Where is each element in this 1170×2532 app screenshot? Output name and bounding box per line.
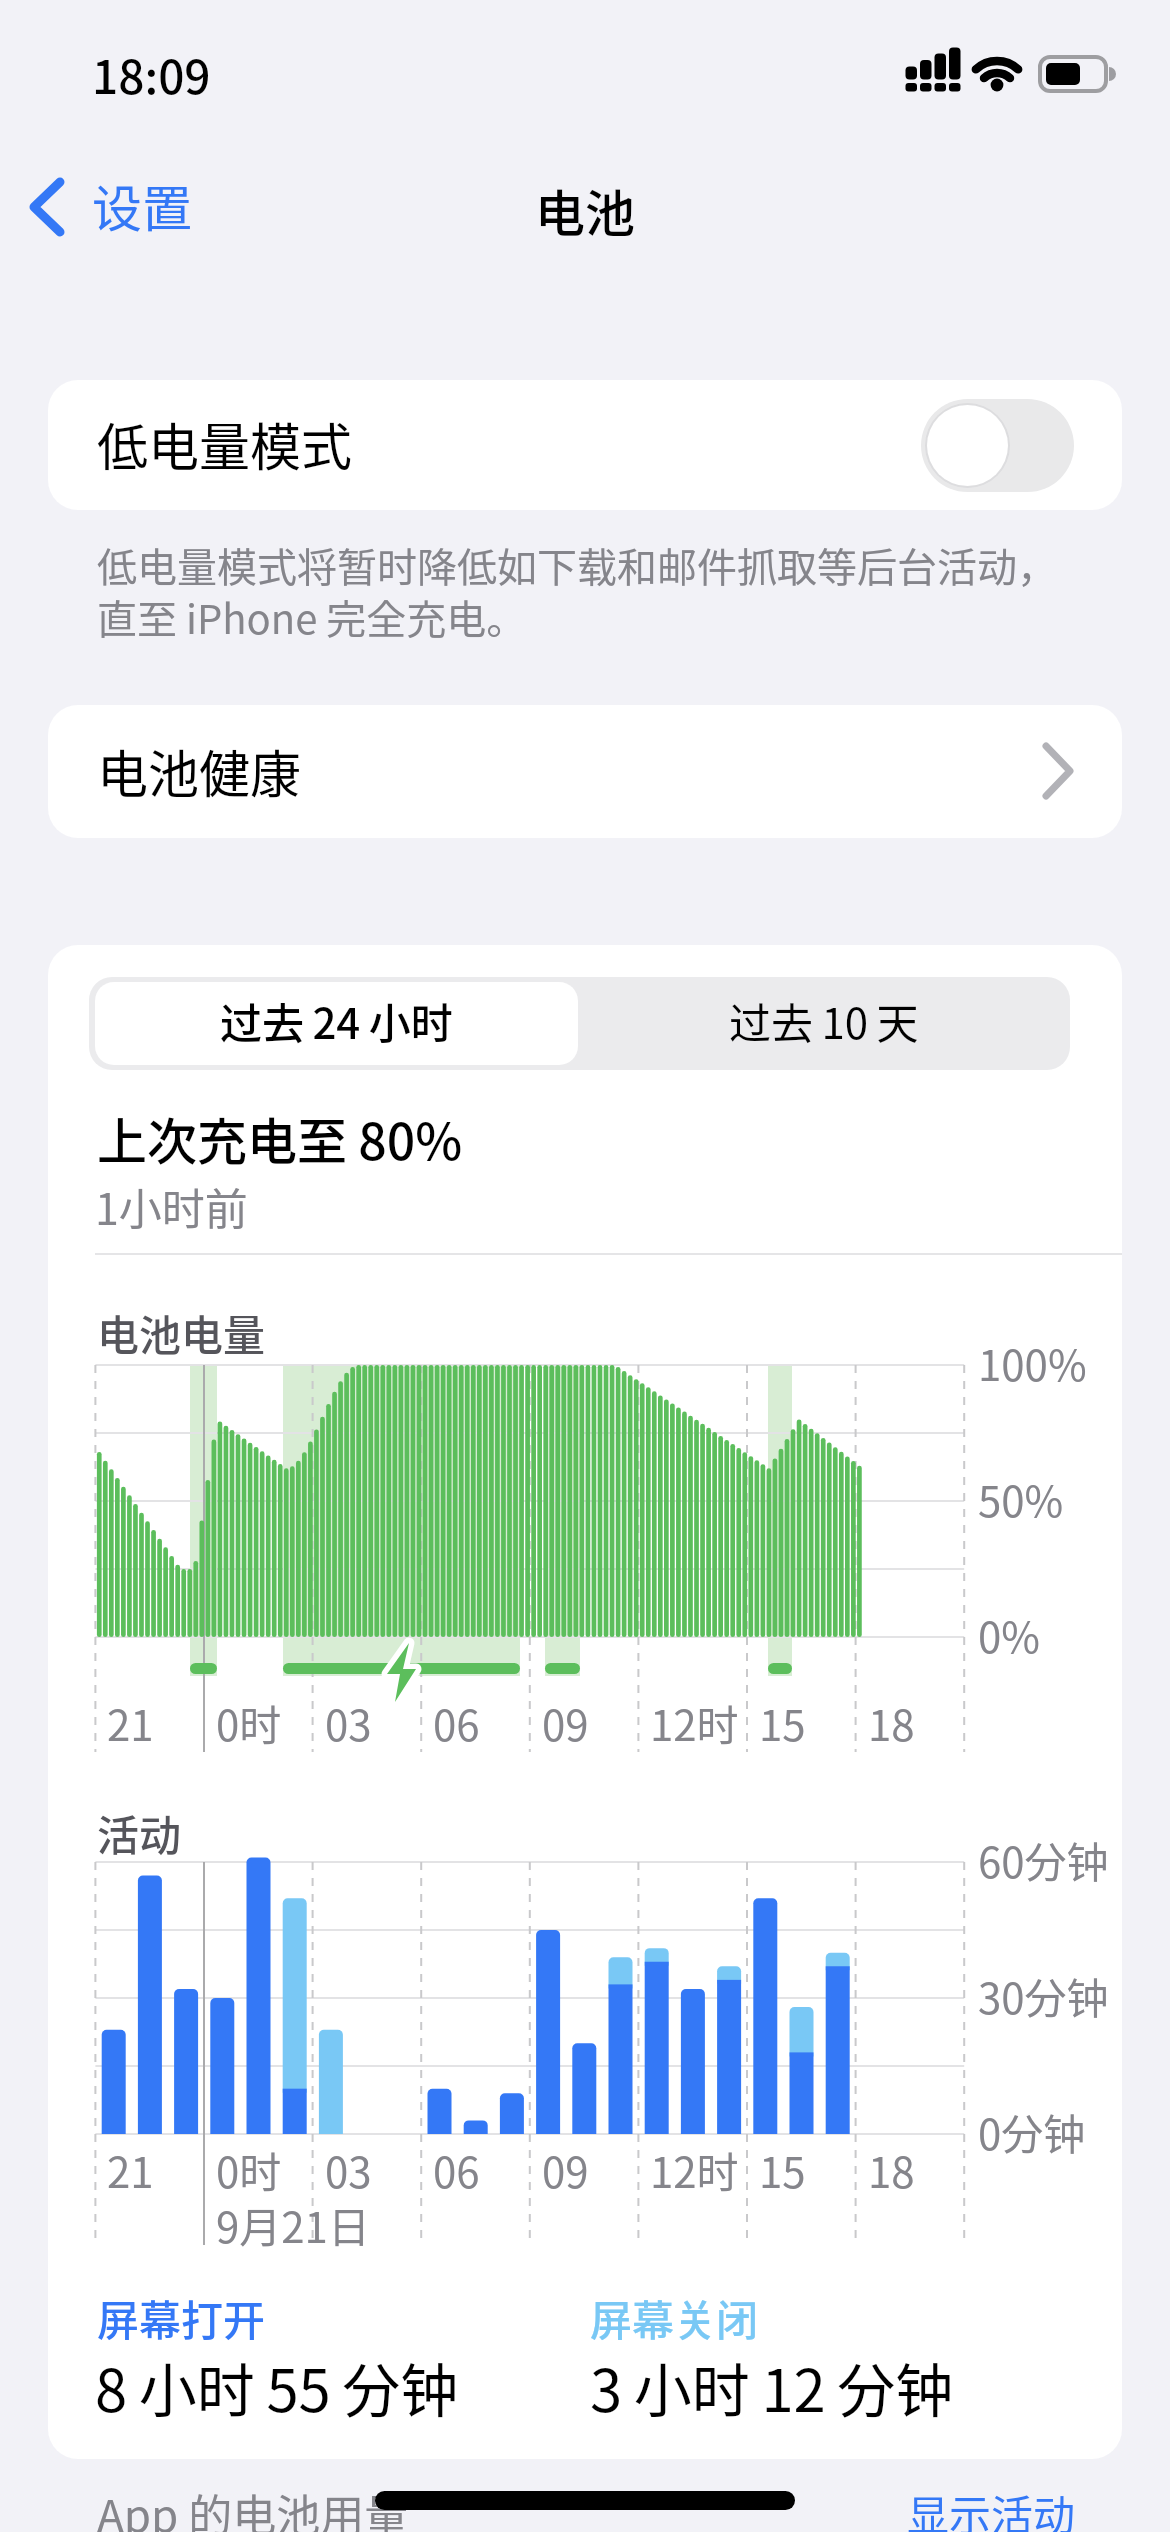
staticText: 03 — [325, 1692, 372, 1753]
button[interactable] — [89, 977, 579, 1070]
staticText: 09 — [542, 1692, 589, 1753]
staticText: 06 — [433, 1692, 480, 1753]
staticText: 1小时前 — [95, 1175, 248, 1237]
button[interactable]: 显示活动 — [907, 2482, 1076, 2532]
staticText: 100% — [978, 1332, 1087, 1393]
staticText: 直至 iPhone 完全充电。 — [97, 588, 527, 646]
staticText: 3 小时 12 分钟 — [590, 2345, 954, 2429]
staticText: 低电量模式将暂时降低如下载和邮件抓取等后台活动， — [97, 536, 1057, 594]
staticText: 18 — [868, 2139, 915, 2200]
staticText: 21 — [107, 2139, 154, 2200]
staticText: 06 — [433, 2139, 480, 2200]
staticText: 显示活动 — [907, 2482, 1076, 2532]
staticText: 活动 — [97, 1802, 182, 1863]
staticText: 03 — [325, 2139, 372, 2200]
staticText: 09 — [542, 2139, 589, 2200]
staticText: 12时 — [650, 2139, 739, 2200]
staticText: 18 — [868, 1692, 915, 1753]
staticText: 过去 24 小时 — [220, 990, 453, 1051]
staticText: 电池 — [535, 174, 635, 246]
staticText: 上次充电至 80% — [97, 1102, 463, 1174]
staticText: 电池健康 — [97, 734, 302, 808]
staticText: 设置 — [92, 169, 192, 241]
staticText: 低电量模式 — [97, 407, 353, 481]
staticText: 0% — [978, 1604, 1040, 1665]
staticText: 30分钟 — [978, 1965, 1109, 2026]
staticText: 15 — [759, 1692, 806, 1753]
staticText: 0时 — [216, 2139, 282, 2200]
button[interactable] — [579, 977, 1070, 1070]
staticText: 屏幕打开 — [97, 2287, 266, 2348]
staticText: 50% — [978, 1468, 1064, 1529]
staticText: 电池电量 — [97, 1302, 266, 1363]
staticText: 过去 10 天 — [729, 990, 919, 1051]
staticText: 21 — [107, 1692, 154, 1753]
staticText: 9月21日 — [216, 2194, 370, 2255]
staticText: 60分钟 — [978, 1829, 1109, 1890]
button[interactable] — [921, 399, 1074, 492]
staticText: 8 小时 55 分钟 — [95, 2345, 459, 2429]
button[interactable] — [20, 170, 210, 250]
staticText: 0分钟 — [978, 2101, 1086, 2162]
staticText: 屏幕关闭 — [590, 2287, 759, 2348]
staticText: 12时 — [650, 1692, 739, 1753]
staticText: 18:09 — [92, 41, 211, 108]
button[interactable] — [48, 705, 1122, 838]
staticText: 15 — [759, 2139, 806, 2200]
staticText: App 的电池用量 — [97, 2481, 409, 2532]
staticText: 0时 — [216, 1692, 282, 1753]
